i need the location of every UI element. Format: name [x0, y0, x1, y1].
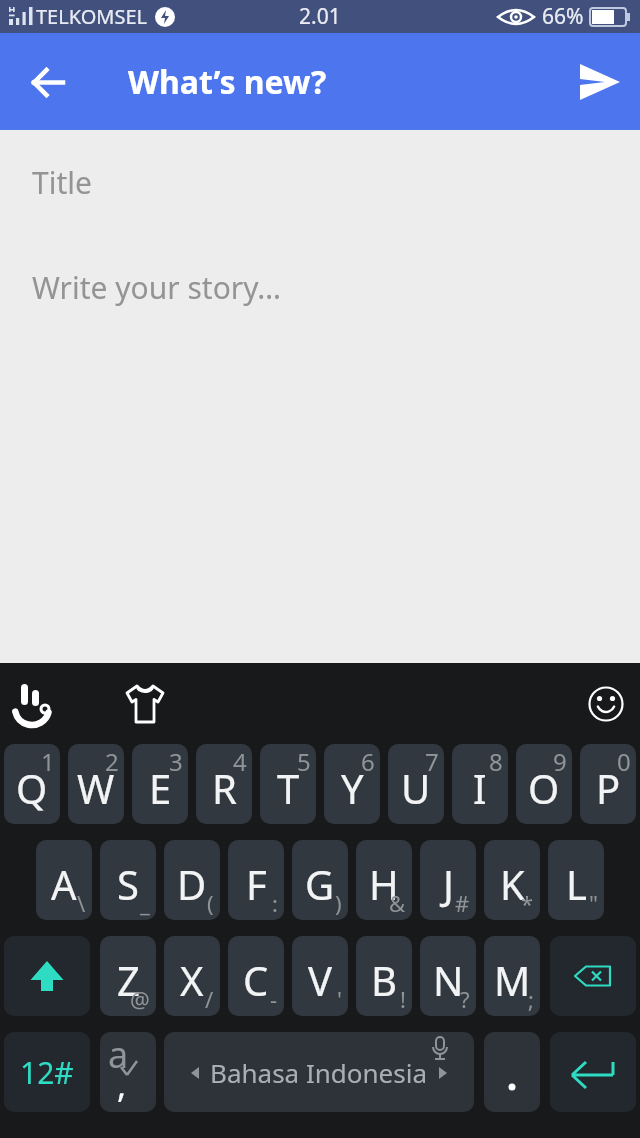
button[interactable] [550, 936, 636, 1016]
button[interactable] [550, 1032, 636, 1112]
button[interactable]: Q [4, 744, 60, 824]
staticText: D [177, 857, 207, 911]
button[interactable]: X [164, 936, 220, 1016]
staticText: ( [207, 888, 214, 918]
staticText: L [566, 857, 587, 911]
staticText: T [277, 761, 300, 815]
staticText: _ [140, 888, 150, 918]
button[interactable]: D [164, 840, 220, 920]
button[interactable]: G [292, 840, 348, 920]
staticText: 2.01 [299, 2, 341, 31]
button[interactable]: N [420, 936, 476, 1016]
staticText: B [371, 953, 397, 1007]
button[interactable]: L [548, 840, 604, 920]
button[interactable]: U [388, 744, 444, 824]
staticText: ' [337, 984, 342, 1014]
staticText: : [272, 888, 278, 918]
staticText: O [528, 761, 560, 815]
staticText: 0 [617, 745, 631, 778]
staticText: P [596, 761, 621, 815]
button[interactable]: R [196, 744, 252, 824]
staticText: 4 [233, 745, 247, 778]
staticText: 9 [553, 745, 567, 778]
button[interactable]: V [292, 936, 348, 1016]
staticText: @ [130, 984, 150, 1014]
button[interactable]: A [36, 840, 92, 920]
staticText: C [243, 953, 269, 1007]
staticText: F [246, 857, 267, 911]
staticText: & [389, 888, 406, 918]
button[interactable]: O [516, 744, 572, 824]
button[interactable] [484, 1032, 540, 1112]
staticText: J [443, 857, 454, 911]
staticText: a [108, 1032, 129, 1079]
staticText: - [270, 984, 278, 1014]
staticText: What’s new? [128, 60, 327, 104]
button[interactable]: Bahasa Indonesia [164, 1032, 474, 1112]
button[interactable]: I [452, 744, 508, 824]
staticText: S [117, 857, 139, 911]
staticText: 2 [105, 745, 119, 778]
button[interactable]: W [68, 744, 124, 824]
button[interactable]: Y [324, 744, 380, 824]
staticText: Write your story… [32, 267, 282, 308]
staticText: U [401, 761, 431, 815]
staticText: 3 [169, 745, 183, 778]
button[interactable]: E [132, 744, 188, 824]
staticText: TELKOMSEL [36, 3, 148, 30]
staticText: 1 [41, 745, 55, 778]
button[interactable]: a [100, 1032, 156, 1112]
button[interactable] [570, 52, 630, 112]
staticText: 6 [361, 745, 375, 778]
staticText: ! [400, 984, 406, 1014]
staticText: * [521, 888, 534, 918]
staticText: # [455, 888, 470, 918]
staticText: H [369, 857, 399, 911]
button[interactable]: S [100, 840, 156, 920]
staticText: \ [77, 888, 86, 918]
staticText: N [433, 953, 464, 1007]
staticText: 12# [20, 1052, 74, 1093]
staticText: ) [335, 888, 342, 918]
button[interactable]: T [260, 744, 316, 824]
button[interactable]: 12# [4, 1032, 90, 1112]
staticText: ? [460, 984, 470, 1014]
staticText: W [77, 761, 115, 815]
staticText: 7 [425, 745, 439, 778]
button[interactable]: F [228, 840, 284, 920]
staticText: Z [117, 953, 140, 1007]
button[interactable]: C [228, 936, 284, 1016]
staticText: G [305, 857, 335, 911]
staticText: Bahasa Indonesia [210, 1055, 428, 1090]
button[interactable]: H [356, 840, 412, 920]
staticText: / [205, 984, 214, 1014]
staticText: V [308, 953, 332, 1007]
button[interactable] [120, 679, 170, 729]
button[interactable] [580, 678, 632, 730]
staticText: E [149, 761, 172, 815]
staticText: K [500, 857, 525, 911]
button[interactable]: P [580, 744, 636, 824]
button[interactable] [4, 936, 90, 1016]
staticText: I [473, 761, 487, 815]
button[interactable]: Z [100, 936, 156, 1016]
staticText: ; [528, 984, 534, 1014]
staticText: 66% [542, 2, 584, 31]
button[interactable] [20, 54, 76, 110]
button[interactable]: B [356, 936, 412, 1016]
staticText: Y [341, 761, 364, 815]
button[interactable]: K [484, 840, 540, 920]
staticText: 5 [297, 745, 311, 778]
staticText: X [180, 953, 204, 1007]
staticText: " [589, 888, 598, 918]
staticText: , [117, 1062, 127, 1108]
staticText: M [494, 953, 531, 1007]
staticText: R [212, 761, 237, 815]
button[interactable]: M [484, 936, 540, 1016]
staticText: A [51, 857, 77, 911]
staticText: Title [32, 162, 92, 203]
staticText: 8 [489, 745, 503, 778]
button[interactable]: J [420, 840, 476, 920]
staticText: Q [16, 761, 48, 815]
button[interactable] [8, 679, 58, 729]
